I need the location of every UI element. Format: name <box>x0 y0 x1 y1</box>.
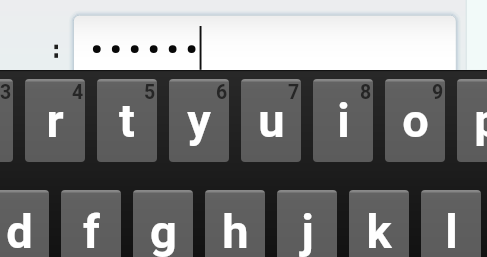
staticText: 7 <box>288 81 300 104</box>
button[interactable]: g <box>133 190 193 257</box>
button[interactable]: h <box>205 190 265 257</box>
button[interactable]: 5 <box>97 79 157 162</box>
button[interactable]: f <box>61 190 121 257</box>
staticText: d <box>6 204 33 257</box>
staticText: l <box>445 204 458 257</box>
button[interactable]: j <box>277 190 337 257</box>
button[interactable]: 8 <box>313 79 373 162</box>
button[interactable]: 9 <box>385 79 445 162</box>
staticText: i <box>337 93 350 148</box>
staticText: 3 <box>0 81 12 104</box>
button[interactable]: 7 <box>241 79 301 162</box>
button[interactable]: 0 <box>457 79 487 162</box>
button[interactable]: Password field <box>73 15 457 85</box>
staticText: 4 <box>72 81 84 104</box>
button[interactable]: d <box>0 190 49 257</box>
staticText: y <box>187 93 211 148</box>
staticText: 8 <box>360 81 372 104</box>
staticText: h <box>222 204 249 257</box>
staticText: g <box>150 204 177 257</box>
staticText: k <box>366 204 392 257</box>
staticText: j <box>301 204 314 257</box>
button[interactable]: 3 <box>0 79 13 162</box>
staticText: 6 <box>216 81 228 104</box>
button[interactable]: k <box>349 190 409 257</box>
staticText: o <box>402 93 429 148</box>
staticText: t <box>119 93 135 148</box>
staticText: u <box>258 93 285 148</box>
staticText: 5 <box>144 81 156 104</box>
button[interactable]: 6 <box>169 79 229 162</box>
button[interactable]: 4 <box>25 79 85 162</box>
staticText: r <box>46 93 64 148</box>
staticText: p <box>474 93 487 148</box>
staticText: 9 <box>432 81 444 104</box>
button[interactable]: l <box>421 190 481 257</box>
staticText: f <box>83 204 100 257</box>
